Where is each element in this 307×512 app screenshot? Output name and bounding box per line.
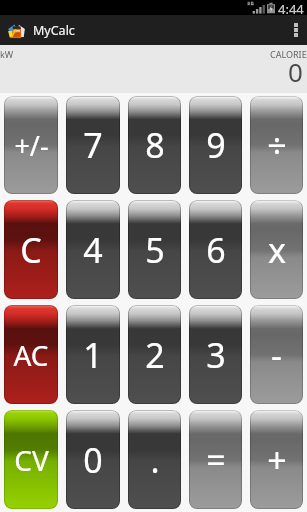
button[interactable]: = bbox=[189, 410, 242, 509]
staticText: = bbox=[206, 437, 226, 483]
button[interactable]: . bbox=[128, 410, 181, 509]
staticText: C bbox=[20, 227, 42, 273]
staticText: ÷ bbox=[267, 122, 287, 168]
button[interactable]: +/- bbox=[4, 96, 58, 194]
button[interactable]: 2 bbox=[128, 305, 181, 404]
button[interactable]: C bbox=[4, 200, 58, 299]
button[interactable]: 8 bbox=[128, 96, 181, 194]
button[interactable]: - bbox=[250, 305, 303, 404]
button[interactable]: 4 bbox=[66, 200, 120, 299]
staticText: 5 bbox=[145, 227, 165, 273]
staticText: 7 bbox=[83, 122, 103, 168]
staticText: 8 bbox=[145, 122, 165, 168]
staticText: 0 bbox=[288, 54, 303, 89]
staticText: + bbox=[267, 437, 287, 483]
staticText: x bbox=[268, 227, 286, 273]
staticText: kW bbox=[0, 48, 14, 60]
button[interactable]: 9 bbox=[189, 96, 242, 194]
staticText: 9 bbox=[206, 122, 226, 168]
button[interactable]: 7 bbox=[66, 96, 120, 194]
button[interactable]: 3 bbox=[189, 305, 242, 404]
staticText: CV bbox=[14, 441, 49, 479]
staticText: 4 bbox=[83, 227, 103, 273]
staticText: 3 bbox=[206, 332, 226, 378]
button[interactable]: CV bbox=[4, 410, 58, 509]
staticText: 0 bbox=[83, 437, 103, 483]
staticText: CALORIE bbox=[270, 48, 307, 60]
button[interactable]: 6 bbox=[189, 200, 242, 299]
staticText: 4:44 bbox=[278, 0, 304, 15]
staticText: 2 bbox=[145, 332, 165, 378]
button[interactable]: ÷ bbox=[250, 96, 303, 194]
staticText: 1 bbox=[83, 332, 103, 378]
staticText: MyCalc bbox=[33, 22, 75, 39]
button[interactable]: + bbox=[250, 410, 303, 509]
staticText: +/- bbox=[14, 127, 49, 164]
staticText: 6 bbox=[206, 227, 226, 273]
button[interactable]: 1 bbox=[66, 305, 120, 404]
staticText: . bbox=[150, 437, 160, 483]
staticText: AC bbox=[13, 336, 49, 374]
staticText: - bbox=[271, 332, 282, 378]
button[interactable]: 5 bbox=[128, 200, 181, 299]
button[interactable]: More options bbox=[285, 15, 307, 45]
button[interactable]: x bbox=[250, 200, 303, 299]
button[interactable]: 0 bbox=[66, 410, 120, 509]
button[interactable]: AC bbox=[4, 305, 58, 404]
